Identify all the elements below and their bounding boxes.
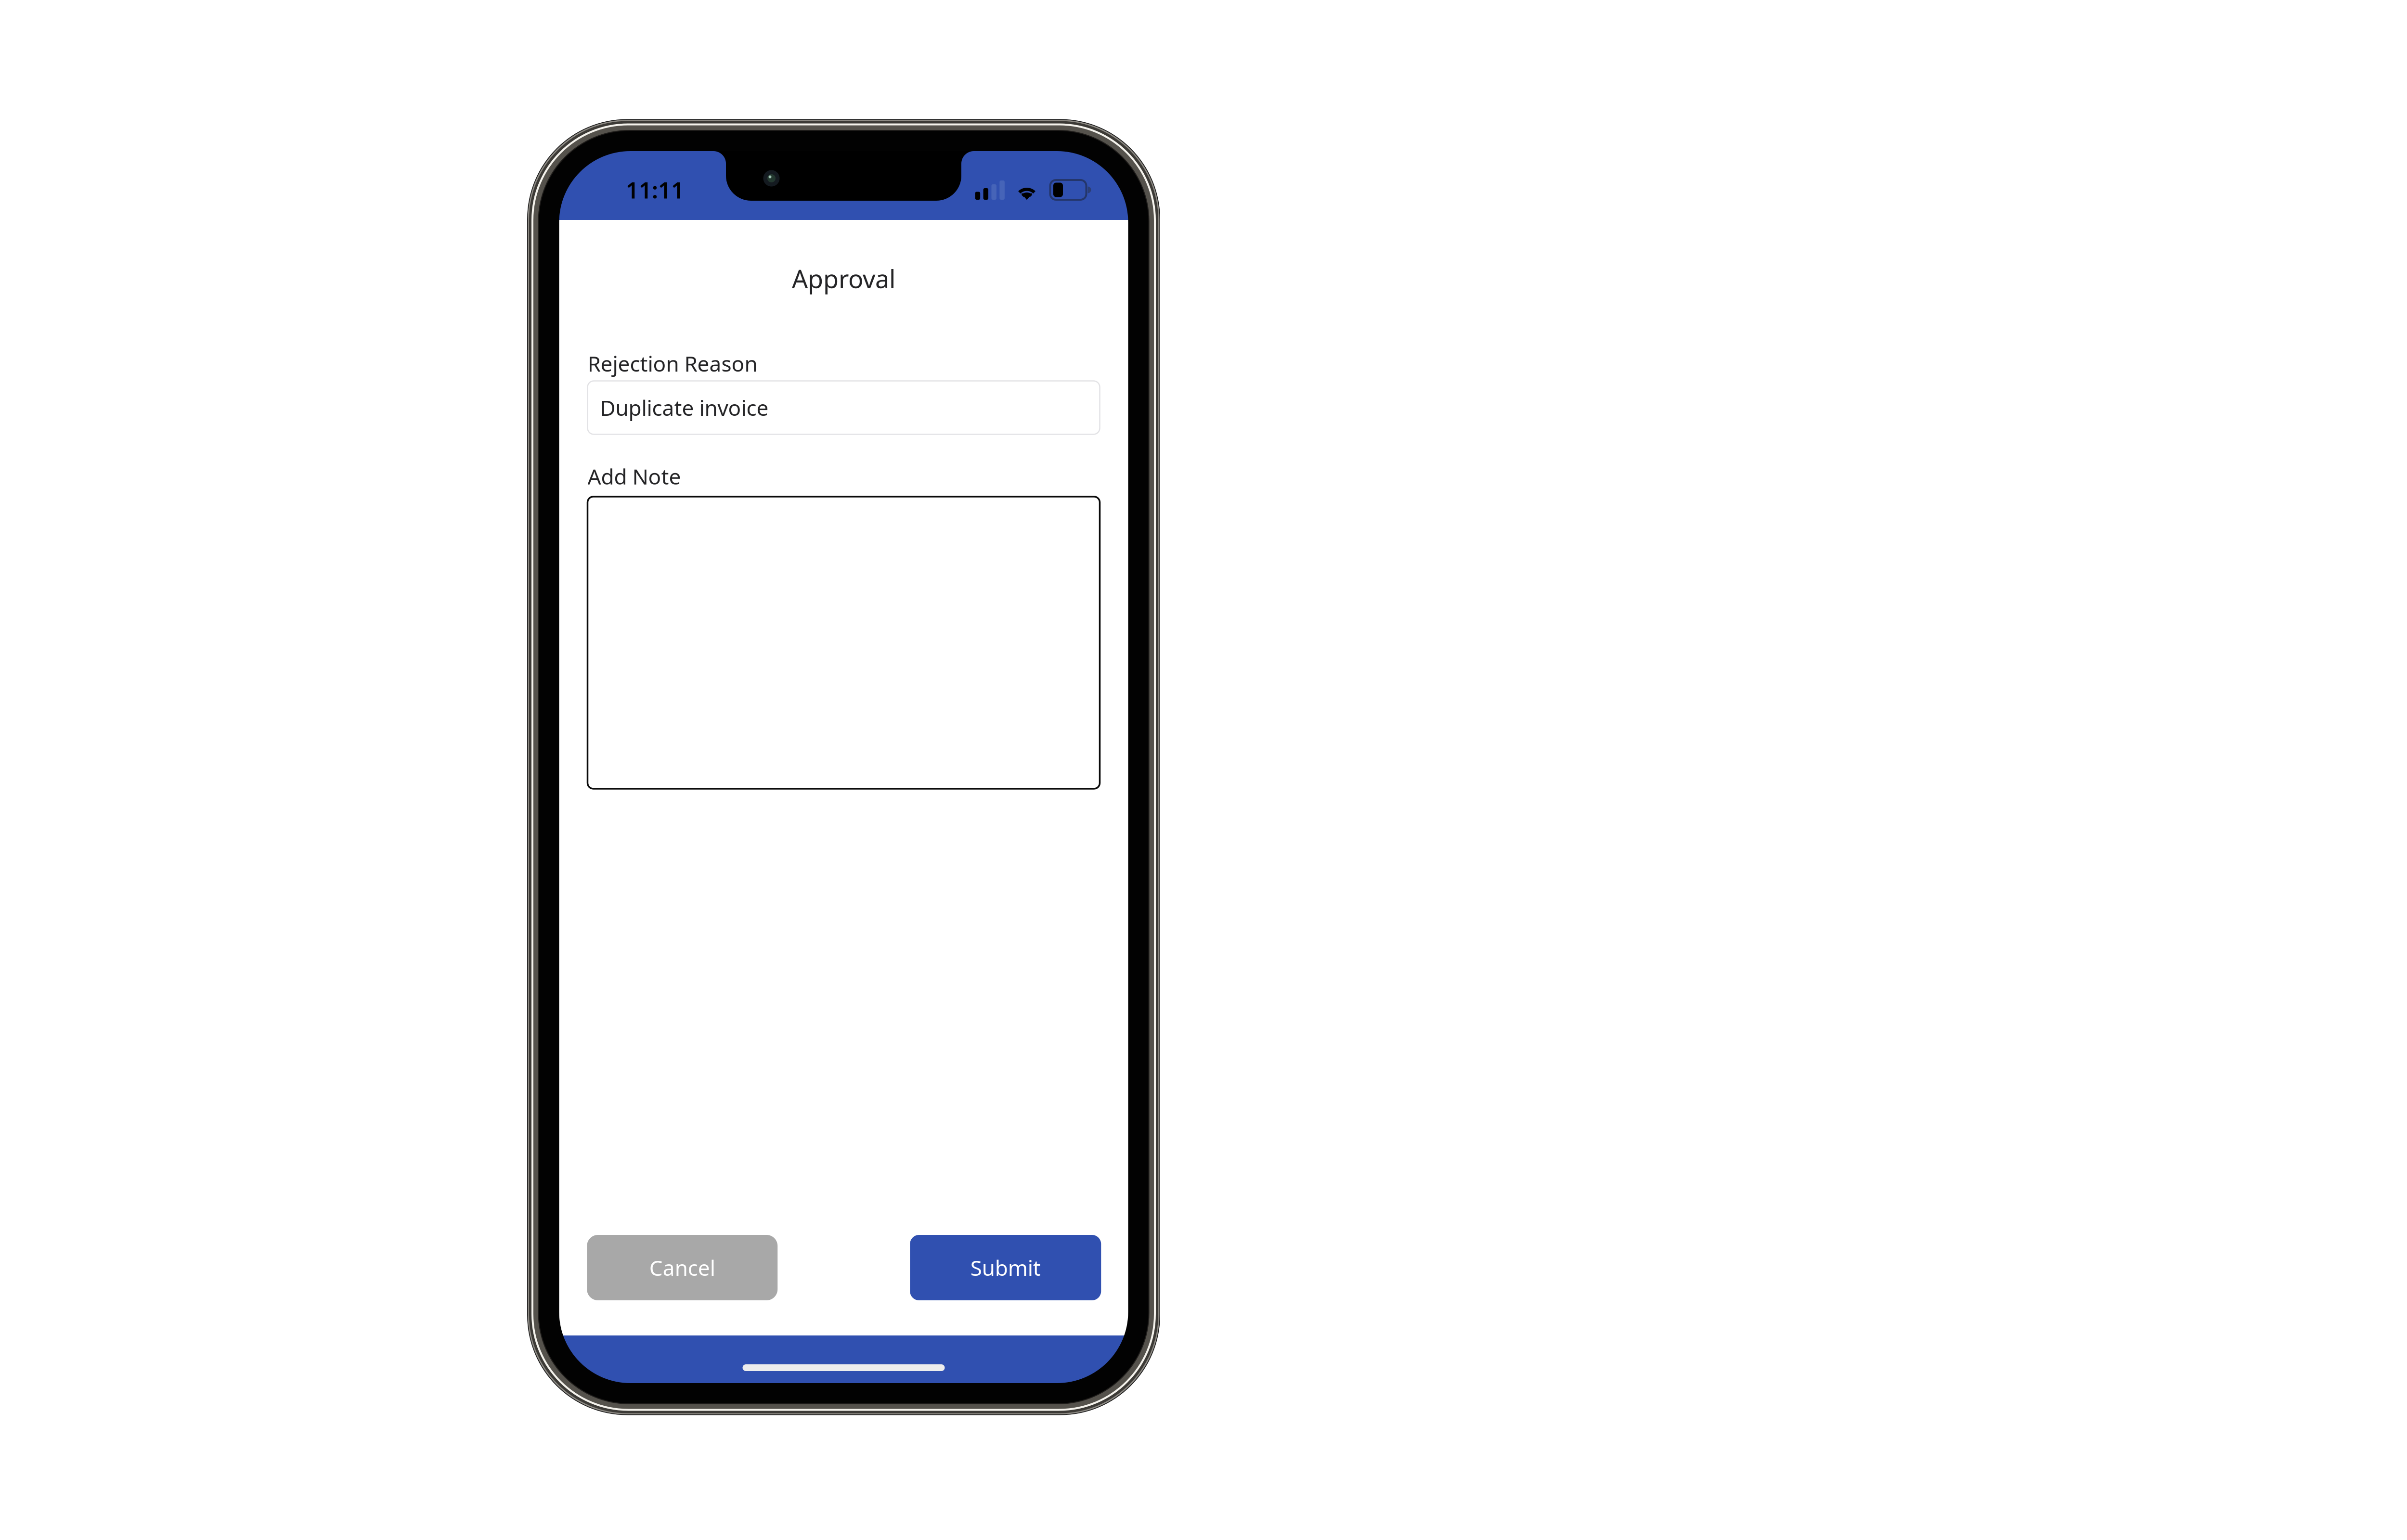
staticText: Submit [970,1254,1041,1282]
staticText: Cancel [649,1254,715,1282]
staticText: Duplicate invoice [600,394,769,422]
button[interactable]: Submit [910,1235,1101,1300]
staticText: Add Note [588,462,681,490]
button[interactable]: Cancel [587,1235,778,1300]
staticText: 11:11 [626,175,684,205]
staticText: Rejection Reason [588,349,757,378]
button[interactable]: Duplicate invoice [588,381,1100,434]
staticText: Approval [792,262,895,295]
